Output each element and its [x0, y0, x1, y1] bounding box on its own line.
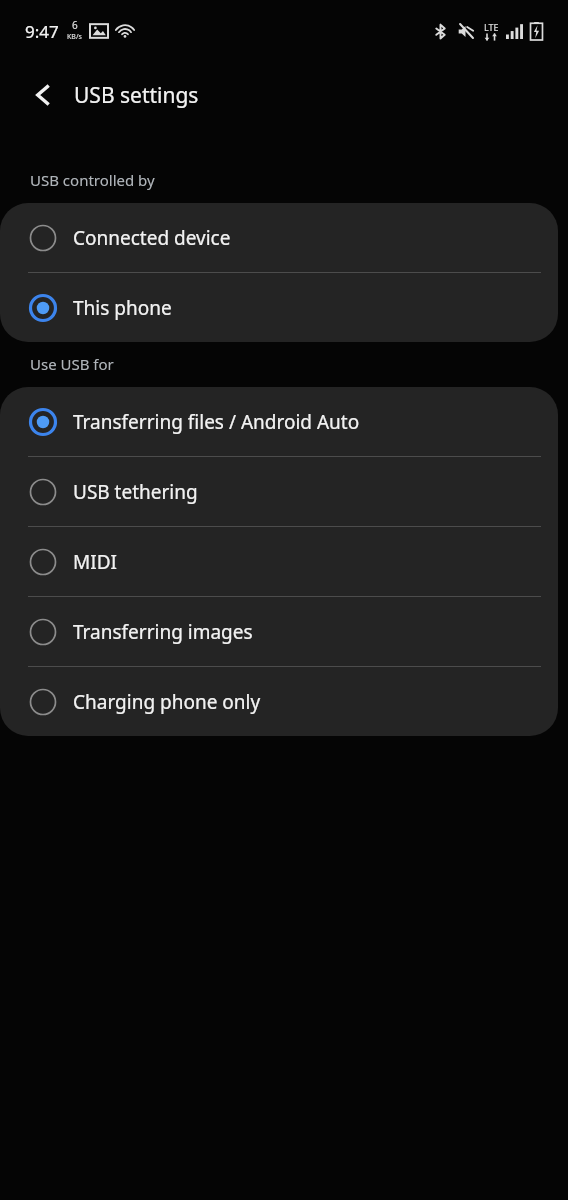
staticText: 6: [72, 18, 78, 32]
staticText: USB tethering: [73, 479, 198, 505]
staticText: Connected device: [73, 225, 231, 251]
staticText: LTE: [484, 21, 499, 33]
staticText: KB/s: [67, 32, 82, 42]
staticText: USB settings: [74, 81, 199, 110]
staticText: Transferring files / Android Auto: [73, 409, 360, 435]
staticText: MIDI: [73, 549, 117, 575]
button[interactable]: Charging phone only: [0, 667, 558, 736]
button[interactable]: USB tethering: [0, 457, 558, 526]
staticText: 9:47: [25, 20, 59, 43]
staticText: Transferring images: [73, 619, 253, 645]
button[interactable]: Back: [21, 73, 65, 117]
button[interactable]: Transferring files / Android Auto: [0, 387, 558, 456]
staticText: Charging phone only: [73, 689, 261, 715]
staticText: Use USB for: [30, 354, 114, 374]
button[interactable]: MIDI: [0, 527, 558, 596]
button[interactable]: Transferring images: [0, 597, 558, 666]
button[interactable]: This phone: [0, 273, 558, 342]
staticText: This phone: [73, 295, 172, 321]
staticText: USB controlled by: [30, 170, 155, 190]
button[interactable]: Connected device: [0, 203, 558, 272]
